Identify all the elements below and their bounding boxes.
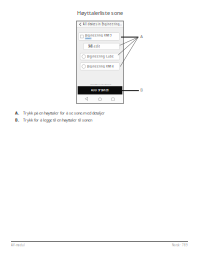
staticText: Engineering Cube bbox=[87, 55, 114, 58]
staticText: SMB-edit bbox=[88, 45, 100, 48]
staticText: AV-modul bbox=[11, 243, 25, 247]
staticText: Trykk for å legge til en høyttaler til s… bbox=[23, 117, 92, 123]
staticText: All devices in Engineering… bbox=[83, 22, 122, 26]
button[interactable]: Recent apps bbox=[110, 97, 115, 102]
staticText: Trykk på en høyttaler for å se sone-med … bbox=[23, 110, 105, 116]
staticText: Engineering RM19 bbox=[85, 34, 112, 37]
button[interactable]: Engineering RM19 bbox=[78, 33, 119, 40]
button[interactable]: Back bbox=[84, 97, 89, 102]
button[interactable]: ADD SPEAKER bbox=[78, 86, 122, 94]
staticText: ADD SPEAKER bbox=[91, 88, 109, 92]
staticText: A bbox=[140, 34, 143, 39]
staticText: A. bbox=[15, 110, 19, 116]
staticText: Norsk · 789 bbox=[172, 243, 188, 247]
button[interactable]: Engineering Cube bbox=[80, 53, 120, 60]
button[interactable]: Home bbox=[97, 97, 102, 102]
staticText: Engineering RM14 bbox=[87, 65, 114, 68]
button[interactable]: SMB-edit bbox=[83, 43, 119, 50]
staticText: B bbox=[140, 87, 143, 92]
button[interactable]: All devices in Engineering… bbox=[76, 21, 123, 27]
button[interactable]: Engineering RM14 bbox=[80, 63, 120, 70]
staticText: B. bbox=[15, 117, 19, 123]
staticText: Sone 1 bbox=[86, 37, 91, 39]
staticText: Velg høyttalere som skal legges til bbox=[89, 83, 110, 85]
staticText: Høyttalerliste sone bbox=[77, 9, 123, 16]
